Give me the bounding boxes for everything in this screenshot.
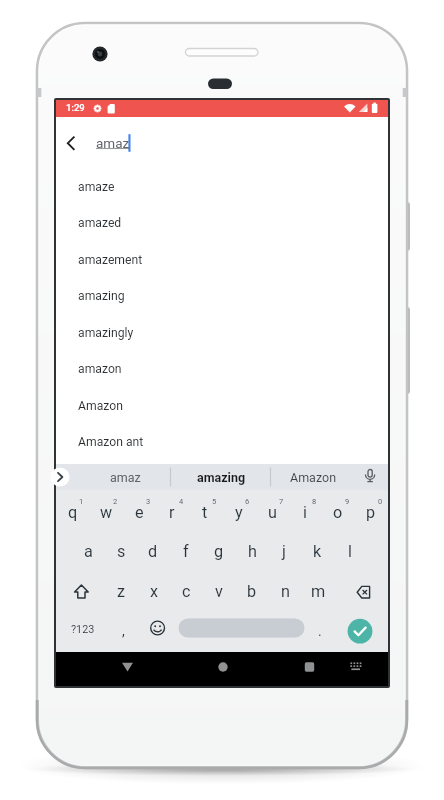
staticText: amazed xyxy=(78,216,122,230)
button[interactable]: c xyxy=(170,572,202,611)
staticText: . xyxy=(318,623,322,639)
staticText: 4 xyxy=(179,497,184,506)
button[interactable]: f xyxy=(170,532,202,571)
staticText: x xyxy=(150,582,159,601)
button[interactable]: n xyxy=(269,572,301,611)
button[interactable]: d xyxy=(137,532,169,571)
staticText: k xyxy=(313,542,322,561)
staticText: s xyxy=(117,542,126,561)
staticText: Amazon xyxy=(290,470,337,485)
button[interactable]: y xyxy=(223,493,255,532)
staticText: , xyxy=(122,623,125,639)
staticText: t xyxy=(202,503,208,522)
button[interactable] xyxy=(344,652,368,686)
staticText: amazingly xyxy=(78,326,134,340)
button[interactable]: amazingly xyxy=(56,314,388,351)
staticText: i xyxy=(303,503,307,522)
button[interactable]: m xyxy=(302,572,334,611)
button[interactable]: z xyxy=(105,572,137,611)
button[interactable]: a xyxy=(72,532,104,571)
button[interactable]: t xyxy=(189,493,221,532)
button[interactable]: h xyxy=(236,532,268,571)
button[interactable]: amazed xyxy=(56,204,388,241)
button[interactable]: amazement xyxy=(56,241,388,278)
staticText: b xyxy=(247,582,257,601)
button[interactable]: o xyxy=(322,493,354,532)
button[interactable]: Amazon ant xyxy=(56,423,388,460)
staticText: w xyxy=(100,503,113,522)
staticText: 0 xyxy=(378,497,383,506)
staticText: j xyxy=(282,542,286,561)
button[interactable]: i xyxy=(289,493,321,532)
button[interactable]: ?123 xyxy=(64,614,102,645)
staticText: 2 xyxy=(113,497,118,506)
staticText: a xyxy=(84,542,93,561)
button[interactable]: u xyxy=(256,493,288,532)
button[interactable]: w xyxy=(90,493,122,532)
staticText: y xyxy=(235,503,243,522)
button[interactable]: amazon xyxy=(56,350,388,387)
staticText: amaze xyxy=(78,180,115,194)
staticText: q xyxy=(68,503,78,522)
staticText: d xyxy=(148,542,158,561)
staticText: 5 xyxy=(212,497,217,506)
staticText: n xyxy=(281,582,290,601)
staticText: amazing xyxy=(197,470,246,485)
staticText: c xyxy=(182,582,191,601)
staticText: p xyxy=(366,503,376,522)
staticText: e xyxy=(135,503,144,522)
button[interactable]: Amazon xyxy=(273,464,353,490)
staticText: g xyxy=(214,542,224,561)
staticText: u xyxy=(268,503,277,522)
staticText: 3 xyxy=(146,497,151,506)
button[interactable] xyxy=(347,618,373,644)
button[interactable] xyxy=(347,577,379,607)
staticText: r xyxy=(169,503,175,522)
button[interactable]: , xyxy=(109,615,137,646)
button[interactable]: . xyxy=(306,615,334,646)
button[interactable]: Amazon xyxy=(56,387,388,424)
button[interactable] xyxy=(142,613,173,643)
staticText: Amazon ant xyxy=(78,435,144,449)
staticText: 6 xyxy=(245,497,250,506)
button[interactable]: l xyxy=(334,532,366,571)
staticText: amazon xyxy=(78,362,122,376)
button[interactable] xyxy=(66,577,97,607)
button[interactable] xyxy=(60,130,86,156)
button[interactable] xyxy=(109,652,146,686)
button[interactable]: e xyxy=(123,493,155,532)
staticText: 9 xyxy=(345,497,350,506)
staticText: 8 xyxy=(312,497,317,506)
button[interactable]: g xyxy=(203,532,235,571)
staticText: m xyxy=(311,582,326,601)
button[interactable]: amazing xyxy=(175,464,267,490)
button[interactable]: p xyxy=(355,493,387,532)
button[interactable]: r xyxy=(156,493,188,532)
button[interactable]: v xyxy=(203,572,235,611)
staticText: v xyxy=(215,582,223,601)
button[interactable] xyxy=(205,652,241,686)
button[interactable]: k xyxy=(301,532,333,571)
staticText: f xyxy=(183,542,189,561)
button[interactable]: j xyxy=(268,532,300,571)
staticText: amazement xyxy=(78,253,143,267)
staticText: 7 xyxy=(279,497,284,506)
button[interactable]: amaz xyxy=(96,126,130,160)
staticText: amaz xyxy=(110,470,141,485)
button[interactable] xyxy=(357,464,384,490)
staticText: Amazon xyxy=(78,399,123,413)
button[interactable]: amaz xyxy=(81,464,169,490)
staticText: amazing xyxy=(78,289,125,303)
button[interactable]: amaze xyxy=(56,168,388,205)
button[interactable] xyxy=(291,652,328,686)
staticText: h xyxy=(248,542,257,561)
staticText: z xyxy=(117,582,126,601)
button[interactable] xyxy=(179,619,305,638)
button[interactable]: amazing xyxy=(56,277,388,314)
button[interactable]: x xyxy=(138,572,170,611)
button[interactable]: b xyxy=(236,572,268,611)
button[interactable]: q xyxy=(57,493,89,532)
staticText: l xyxy=(348,542,352,561)
button[interactable] xyxy=(48,465,72,489)
button[interactable]: s xyxy=(105,532,137,571)
